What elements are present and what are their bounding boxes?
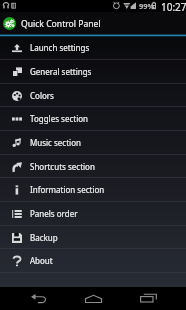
staticText: Toggles section: [30, 113, 88, 124]
button[interactable]: Colors: [0, 84, 186, 108]
staticText: Shortcuts section: [30, 161, 95, 172]
staticText: General settings: [30, 66, 92, 77]
staticText: 99%: [139, 1, 155, 11]
button[interactable]: Information section: [0, 178, 186, 202]
button[interactable]: Quick Control Panel: [0, 12, 186, 34]
staticText: Backup: [30, 232, 58, 243]
button[interactable]: Music section: [0, 131, 186, 155]
button[interactable]: General settings: [0, 60, 186, 84]
button[interactable]: Shortcuts section: [0, 155, 186, 179]
button[interactable]: Backup: [0, 226, 186, 250]
staticText: Quick Control Panel: [21, 18, 101, 30]
staticText: Panels order: [30, 208, 78, 219]
staticText: Launch settings: [30, 42, 90, 53]
button[interactable]: Toggles section: [0, 107, 186, 131]
staticText: Information section: [30, 184, 105, 195]
button[interactable]: Home: [73, 287, 113, 310]
staticText: Colors: [30, 90, 54, 101]
button[interactable]: Panels order: [0, 202, 186, 226]
button[interactable]: Launch settings: [0, 36, 186, 60]
button[interactable]: Back: [18, 287, 58, 310]
staticText: About: [30, 255, 53, 266]
button[interactable]: Recent apps: [128, 287, 168, 310]
staticText: 10:27: [161, 0, 186, 12]
button[interactable]: About: [0, 249, 186, 273]
staticText: Music section: [30, 137, 81, 148]
